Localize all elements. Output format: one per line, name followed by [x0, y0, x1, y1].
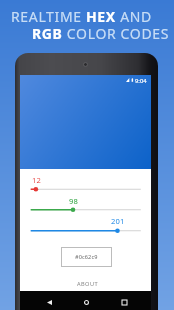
staticText: #0c62c9: [75, 253, 98, 261]
button[interactable]: Recent apps: [115, 291, 133, 310]
staticText: 12: [32, 175, 41, 185]
staticText: ABOUT: [77, 280, 99, 288]
staticText: RGB COLOR CODES: [32, 24, 170, 43]
button[interactable]: ABOUT: [74, 277, 102, 291]
button[interactable]: Back: [40, 291, 58, 310]
staticText: 201: [111, 216, 125, 226]
staticText: REALTIME HEX AND: [11, 7, 152, 26]
button[interactable]: #0c62c9: [61, 247, 112, 267]
staticText: 98: [69, 196, 78, 206]
staticText: 9:04: [135, 77, 147, 85]
button[interactable]: Home: [77, 291, 95, 310]
